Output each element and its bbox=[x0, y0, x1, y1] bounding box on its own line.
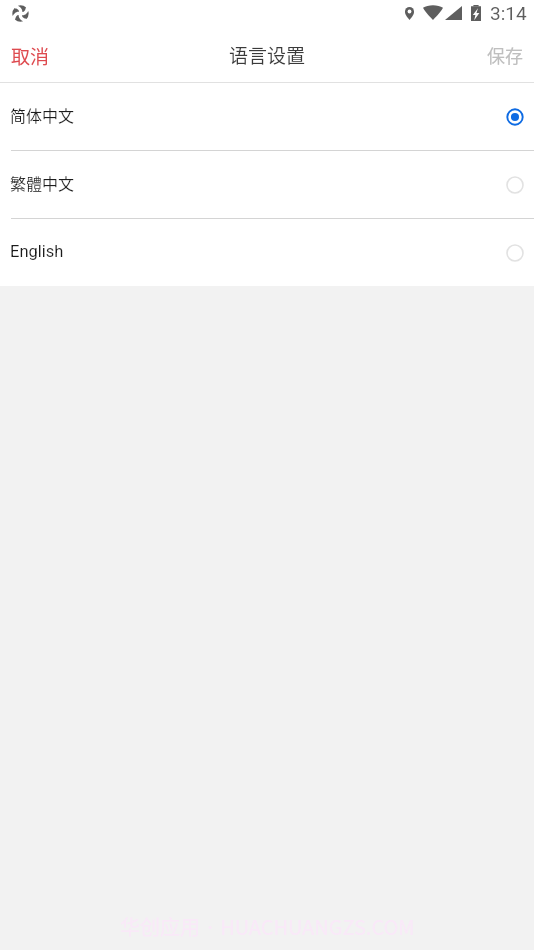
staticText: 语言设置 bbox=[229, 41, 306, 69]
staticText: 繁體中文 bbox=[10, 171, 75, 194]
staticText: 简体中文 bbox=[10, 103, 75, 126]
staticText: 保存 bbox=[487, 42, 523, 67]
button[interactable]: 繁體中文 bbox=[0, 151, 534, 219]
staticText: 3:14 bbox=[490, 2, 527, 24]
button[interactable]: 简体中文 bbox=[0, 83, 534, 151]
button[interactable]: English bbox=[0, 219, 534, 286]
staticText: 华创应用 · HUACHUANGZS.COM bbox=[120, 912, 415, 941]
button[interactable]: 取消 bbox=[0, 30, 61, 79]
staticText: 取消 bbox=[11, 42, 50, 67]
button[interactable]: 保存 bbox=[476, 30, 534, 79]
other: App bbox=[12, 5, 29, 22]
staticText: English bbox=[10, 242, 64, 261]
